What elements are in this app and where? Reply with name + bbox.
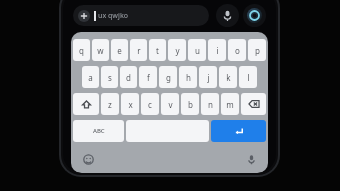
staticText: t xyxy=(156,45,159,56)
button[interactable]: a xyxy=(82,66,99,88)
button[interactable]: Voice search xyxy=(216,4,239,27)
staticText: v xyxy=(168,99,173,110)
staticText: j xyxy=(207,72,210,83)
button[interactable]: b xyxy=(181,93,199,115)
staticText: h xyxy=(186,72,191,83)
staticText: s xyxy=(108,72,112,83)
button[interactable]: t xyxy=(149,39,166,61)
staticText: n xyxy=(208,99,213,110)
button[interactable]: i xyxy=(208,39,226,61)
staticText: m xyxy=(226,99,234,110)
button[interactable]: q xyxy=(73,39,90,61)
button[interactable]: s xyxy=(101,66,118,88)
staticText: o xyxy=(235,45,240,56)
staticText: c xyxy=(148,99,152,110)
staticText: q xyxy=(79,45,84,56)
button[interactable]: g xyxy=(159,66,177,88)
staticText: l xyxy=(247,72,250,83)
button[interactable]: Add xyxy=(73,5,209,26)
button[interactable]: f xyxy=(139,66,157,88)
button[interactable]: Backspace xyxy=(241,93,266,115)
button[interactable]: m xyxy=(221,93,239,115)
staticText: x xyxy=(128,99,133,110)
button[interactable]: h xyxy=(179,66,197,88)
staticText: r xyxy=(137,45,141,56)
staticText: b xyxy=(188,99,193,110)
button[interactable]: ABC xyxy=(73,120,124,142)
button[interactable]: u xyxy=(188,39,206,61)
button[interactable]: Add xyxy=(78,10,90,22)
staticText: p xyxy=(255,45,260,56)
button[interactable]: r xyxy=(130,39,147,61)
button[interactable]: o xyxy=(228,39,246,61)
button[interactable]: n xyxy=(201,93,219,115)
staticText: u xyxy=(195,45,200,56)
button[interactable]: w xyxy=(92,39,109,61)
staticText: y xyxy=(175,45,180,56)
staticText: ABC xyxy=(93,127,105,135)
button[interactable]: y xyxy=(168,39,186,61)
button[interactable]: k xyxy=(219,66,237,88)
button[interactable]: e xyxy=(111,39,128,61)
button[interactable]: Voice input xyxy=(243,151,259,167)
staticText: a xyxy=(88,72,93,83)
staticText: e xyxy=(117,45,122,56)
staticText: z xyxy=(108,99,112,110)
staticText: g xyxy=(166,72,171,83)
button[interactable]: d xyxy=(120,66,137,88)
staticText: f xyxy=(147,72,150,83)
staticText: ux qwjko xyxy=(98,11,129,21)
staticText: w xyxy=(97,45,104,56)
button[interactable]: c xyxy=(141,93,159,115)
button[interactable]: Enter xyxy=(211,120,266,142)
staticText: k xyxy=(226,72,231,83)
staticText: d xyxy=(126,72,131,83)
button[interactable]: j xyxy=(199,66,217,88)
button[interactable]: Shift xyxy=(73,93,99,115)
button[interactable]: x xyxy=(121,93,139,115)
button[interactable]: z xyxy=(101,93,119,115)
staticText: i xyxy=(216,45,219,56)
button[interactable]: Assistant xyxy=(243,4,266,27)
button[interactable]: Space xyxy=(126,120,209,142)
button[interactable]: p xyxy=(248,39,266,61)
button[interactable]: v xyxy=(161,93,179,115)
button[interactable]: l xyxy=(239,66,257,88)
button[interactable]: Emoji xyxy=(80,151,96,167)
